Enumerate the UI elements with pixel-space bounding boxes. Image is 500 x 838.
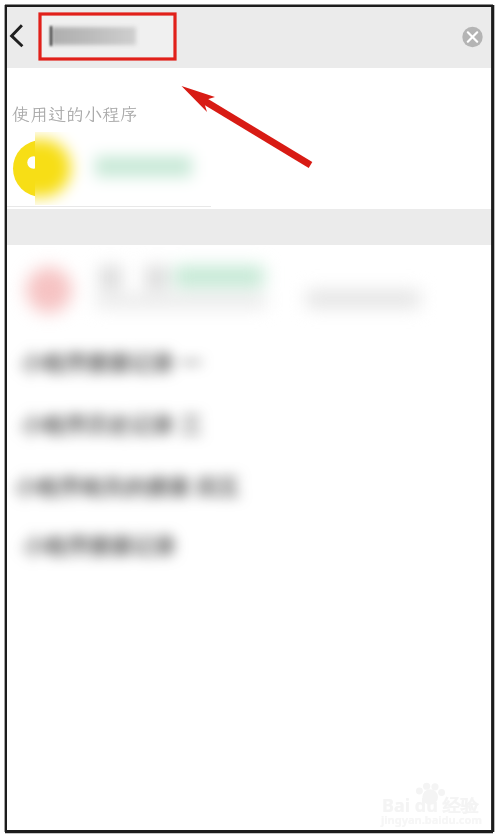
staticText: 小程序搜索记录 <box>22 533 176 561</box>
staticText: 小程序搜索记录 一 <box>20 347 202 377</box>
button[interactable] <box>40 14 175 59</box>
button[interactable] <box>6 250 493 328</box>
button[interactable]: Back <box>7 20 39 52</box>
staticText: Bai du 经验 <box>382 793 479 818</box>
button[interactable]: Clear search <box>458 23 487 52</box>
staticText: 小程序相关的搜索 四五 <box>14 471 240 501</box>
button[interactable] <box>35 132 245 205</box>
staticText: 使用过的小程序 <box>12 102 138 126</box>
staticText: jingyan.baidu.com <box>381 812 483 827</box>
staticText: 小程序历史记录 三 <box>20 409 202 439</box>
